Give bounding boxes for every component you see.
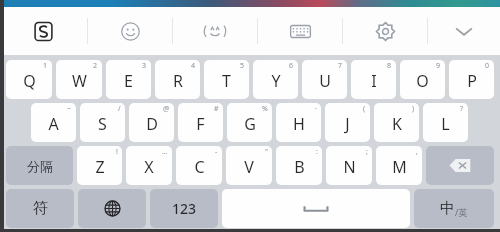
button[interactable]: 123 xyxy=(150,189,218,228)
button[interactable]: L xyxy=(423,103,468,142)
staticText: % xyxy=(262,104,268,114)
button[interactable]: Hide keyboard xyxy=(428,7,500,55)
staticText: 3 xyxy=(142,61,147,71)
staticText: G xyxy=(244,113,256,135)
staticText: 符 xyxy=(33,199,48,218)
staticText: 9 xyxy=(436,61,441,71)
staticText: 123 xyxy=(172,199,197,218)
button[interactable]: Emoji xyxy=(88,7,172,55)
staticText: @ xyxy=(163,104,170,114)
button[interactable]: J xyxy=(325,103,370,142)
staticText: 0 xyxy=(485,61,490,71)
staticText: H xyxy=(293,113,305,135)
staticText: L xyxy=(441,113,450,135)
button[interactable]: Space xyxy=(222,189,410,228)
staticText: ( xyxy=(363,104,366,114)
staticText: 4 xyxy=(191,61,196,71)
staticText: J xyxy=(345,113,350,135)
staticText: E xyxy=(124,70,133,92)
button[interactable]: Settings xyxy=(343,7,427,55)
button[interactable]: U xyxy=(302,60,347,99)
staticText: S xyxy=(98,113,107,135)
staticText: Y xyxy=(271,70,281,92)
staticText: I xyxy=(371,70,377,92)
staticText: X xyxy=(144,156,154,178)
staticText: 分隔 xyxy=(27,158,53,174)
button[interactable]: A xyxy=(31,103,76,142)
staticText: 7 xyxy=(338,61,343,71)
button[interactable]: K xyxy=(374,103,419,142)
staticText: : xyxy=(316,147,318,157)
button[interactable]: D xyxy=(129,103,174,142)
staticText: B xyxy=(294,156,305,178)
button[interactable]: B xyxy=(276,146,322,185)
staticText: O xyxy=(416,70,429,92)
staticText: T xyxy=(222,70,231,92)
button[interactable]: 分隔 xyxy=(6,146,73,185)
staticText: D xyxy=(146,113,158,135)
button[interactable]: Keyboard layout xyxy=(258,7,342,55)
staticText: # xyxy=(214,104,219,114)
staticText: 5 xyxy=(240,61,245,71)
button[interactable]: Q xyxy=(6,60,52,99)
staticText: M xyxy=(392,156,407,178)
button[interactable]: P xyxy=(449,60,494,99)
button[interactable]: 中 xyxy=(414,189,494,228)
button[interactable]: C xyxy=(176,146,222,185)
staticText: … xyxy=(162,147,168,157)
staticText: ! xyxy=(116,147,118,157)
staticText: R xyxy=(173,70,183,92)
button[interactable]: M xyxy=(376,146,422,185)
staticText: W xyxy=(72,70,87,92)
button[interactable]: H xyxy=(276,103,321,142)
staticText: / xyxy=(118,104,121,114)
staticText: ) xyxy=(412,104,415,114)
button[interactable]: X xyxy=(126,146,172,185)
staticText: U xyxy=(319,70,331,92)
button[interactable]: E xyxy=(106,60,151,99)
staticText: 中 xyxy=(440,199,455,218)
staticText: 8 xyxy=(387,61,392,71)
button[interactable]: G xyxy=(227,103,272,142)
button[interactable]: Switch input language xyxy=(78,189,146,228)
staticText: Q xyxy=(23,70,36,92)
staticText: " xyxy=(265,147,268,157)
button[interactable]: N xyxy=(326,146,372,185)
staticText: Z xyxy=(95,156,105,178)
staticText: C xyxy=(194,156,205,178)
button[interactable]: S xyxy=(80,103,125,142)
staticText: A xyxy=(48,113,59,135)
button[interactable]: V xyxy=(226,146,272,185)
staticText: - xyxy=(215,147,218,157)
staticText: , xyxy=(416,147,418,157)
button[interactable]: Backspace xyxy=(426,146,494,185)
button[interactable]: 符 xyxy=(6,189,74,228)
staticText: · xyxy=(315,104,317,114)
staticText: ; xyxy=(366,147,368,157)
button[interactable]: O xyxy=(400,60,445,99)
button[interactable]: W xyxy=(56,60,102,99)
button[interactable]: Sogou input xyxy=(0,7,87,55)
staticText: F xyxy=(196,113,205,135)
staticText: /英 xyxy=(455,206,468,218)
staticText: N xyxy=(343,156,356,178)
button[interactable]: Z xyxy=(77,146,122,185)
button[interactable]: Y xyxy=(253,60,298,99)
button[interactable]: F xyxy=(178,103,223,142)
staticText: 6 xyxy=(289,61,294,71)
staticText: 1 xyxy=(43,61,48,71)
staticText: P xyxy=(467,70,477,92)
staticText: K xyxy=(392,113,402,135)
button[interactable]: T xyxy=(204,60,249,99)
button[interactable]: I xyxy=(351,60,396,99)
staticText: 2 xyxy=(93,61,98,71)
button[interactable]: R xyxy=(155,60,200,99)
staticText: ? xyxy=(460,104,464,114)
staticText: V xyxy=(244,156,254,178)
button[interactable]: Kaomoji xyxy=(173,7,257,55)
staticText: ~ xyxy=(67,104,72,114)
